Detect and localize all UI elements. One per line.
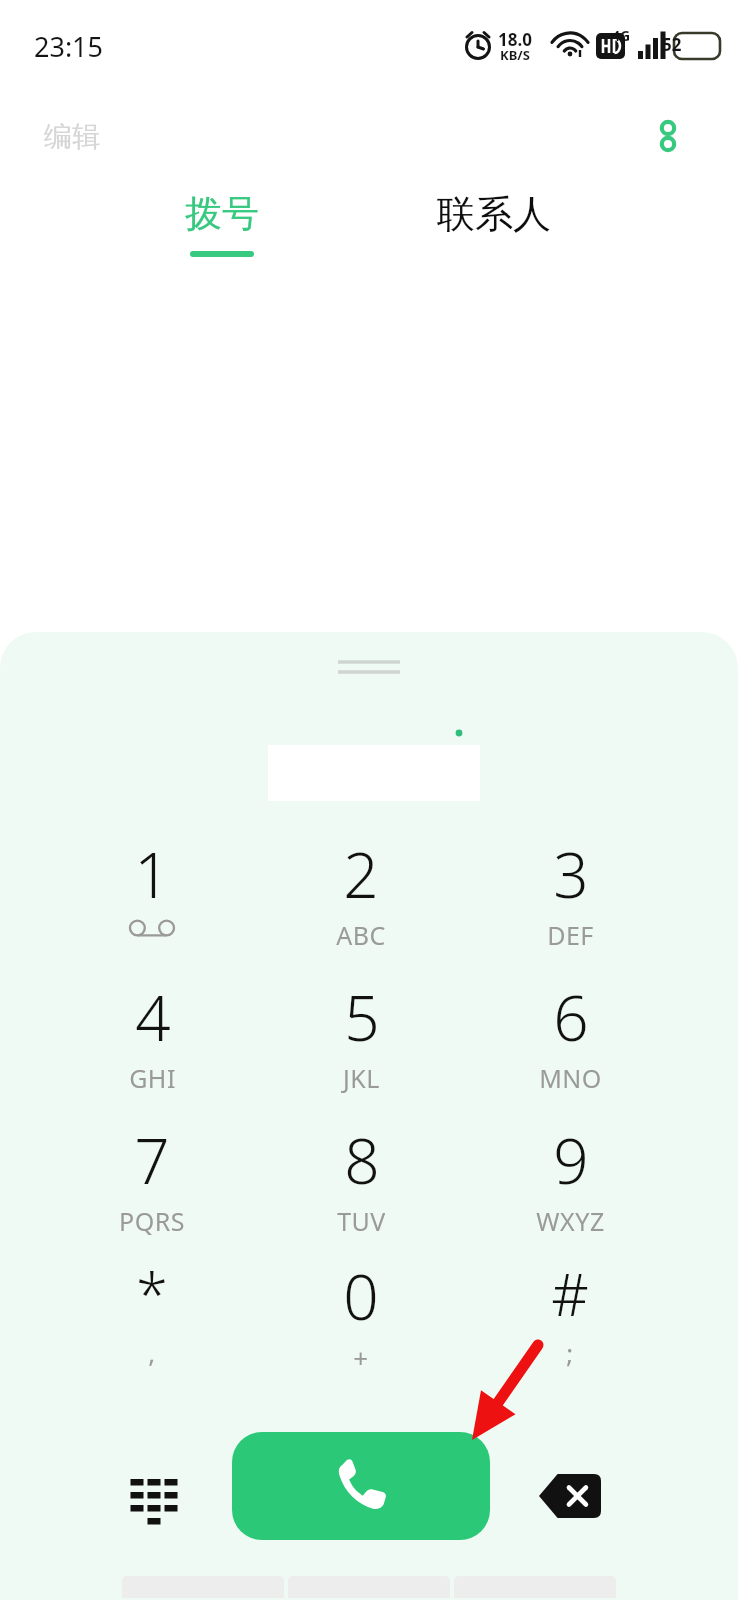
button[interactable]: #: [478, 1254, 662, 1382]
button[interactable]: 6: [478, 975, 662, 1103]
button[interactable]: 拨号: [142, 190, 302, 295]
staticText: #: [551, 1254, 589, 1333]
button[interactable]: 9: [478, 1118, 662, 1246]
button[interactable]: Backspace: [518, 1444, 622, 1548]
staticText: 1: [134, 832, 170, 916]
button[interactable]: 7: [60, 1118, 244, 1246]
staticText: +: [353, 1340, 369, 1375]
staticText: 8: [344, 1118, 380, 1202]
staticText: *: [136, 1254, 168, 1333]
staticText: MNO: [539, 1061, 602, 1095]
staticText: DEF: [547, 918, 594, 952]
staticText: 4G: [612, 26, 631, 45]
staticText: 9: [553, 1118, 589, 1202]
button[interactable]: 1: [60, 832, 244, 960]
staticText: 0: [343, 1254, 379, 1338]
button[interactable]: 编辑: [30, 111, 114, 162]
button[interactable]: Call: [232, 1432, 490, 1540]
button[interactable]: 8: [269, 1118, 453, 1246]
staticText: 7: [134, 1118, 170, 1202]
button[interactable]: 3: [478, 832, 662, 960]
button[interactable]: *: [60, 1254, 244, 1382]
staticText: KB/S: [500, 46, 530, 64]
button[interactable]: 0: [269, 1254, 453, 1382]
button[interactable]: 联系人: [404, 190, 584, 295]
staticText: PQRS: [119, 1204, 185, 1238]
staticText: 52: [662, 33, 682, 56]
staticText: 5: [344, 975, 380, 1059]
button[interactable]: 4: [60, 975, 244, 1103]
staticText: GHI: [129, 1061, 176, 1095]
staticText: ABC: [336, 918, 386, 952]
button[interactable]: 2: [269, 832, 453, 960]
staticText: JKL: [343, 1061, 380, 1095]
button[interactable]: More options: [640, 108, 696, 164]
staticText: 3: [553, 832, 589, 916]
staticText: 编辑: [44, 119, 100, 154]
staticText: ,: [148, 1335, 156, 1370]
staticText: TUV: [337, 1204, 386, 1238]
staticText: 联系人: [437, 190, 551, 238]
staticText: 18.0: [498, 28, 532, 51]
staticText: 6: [553, 975, 589, 1059]
staticText: 4: [135, 975, 171, 1059]
staticText: 2: [343, 832, 379, 916]
staticText: 拨号: [185, 190, 259, 237]
staticText: WXYZ: [536, 1204, 605, 1238]
staticText: 23:15: [34, 28, 104, 65]
button[interactable]: Hide keypad: [102, 1444, 206, 1548]
staticText: ;: [566, 1335, 574, 1370]
button[interactable]: 5: [269, 975, 453, 1103]
